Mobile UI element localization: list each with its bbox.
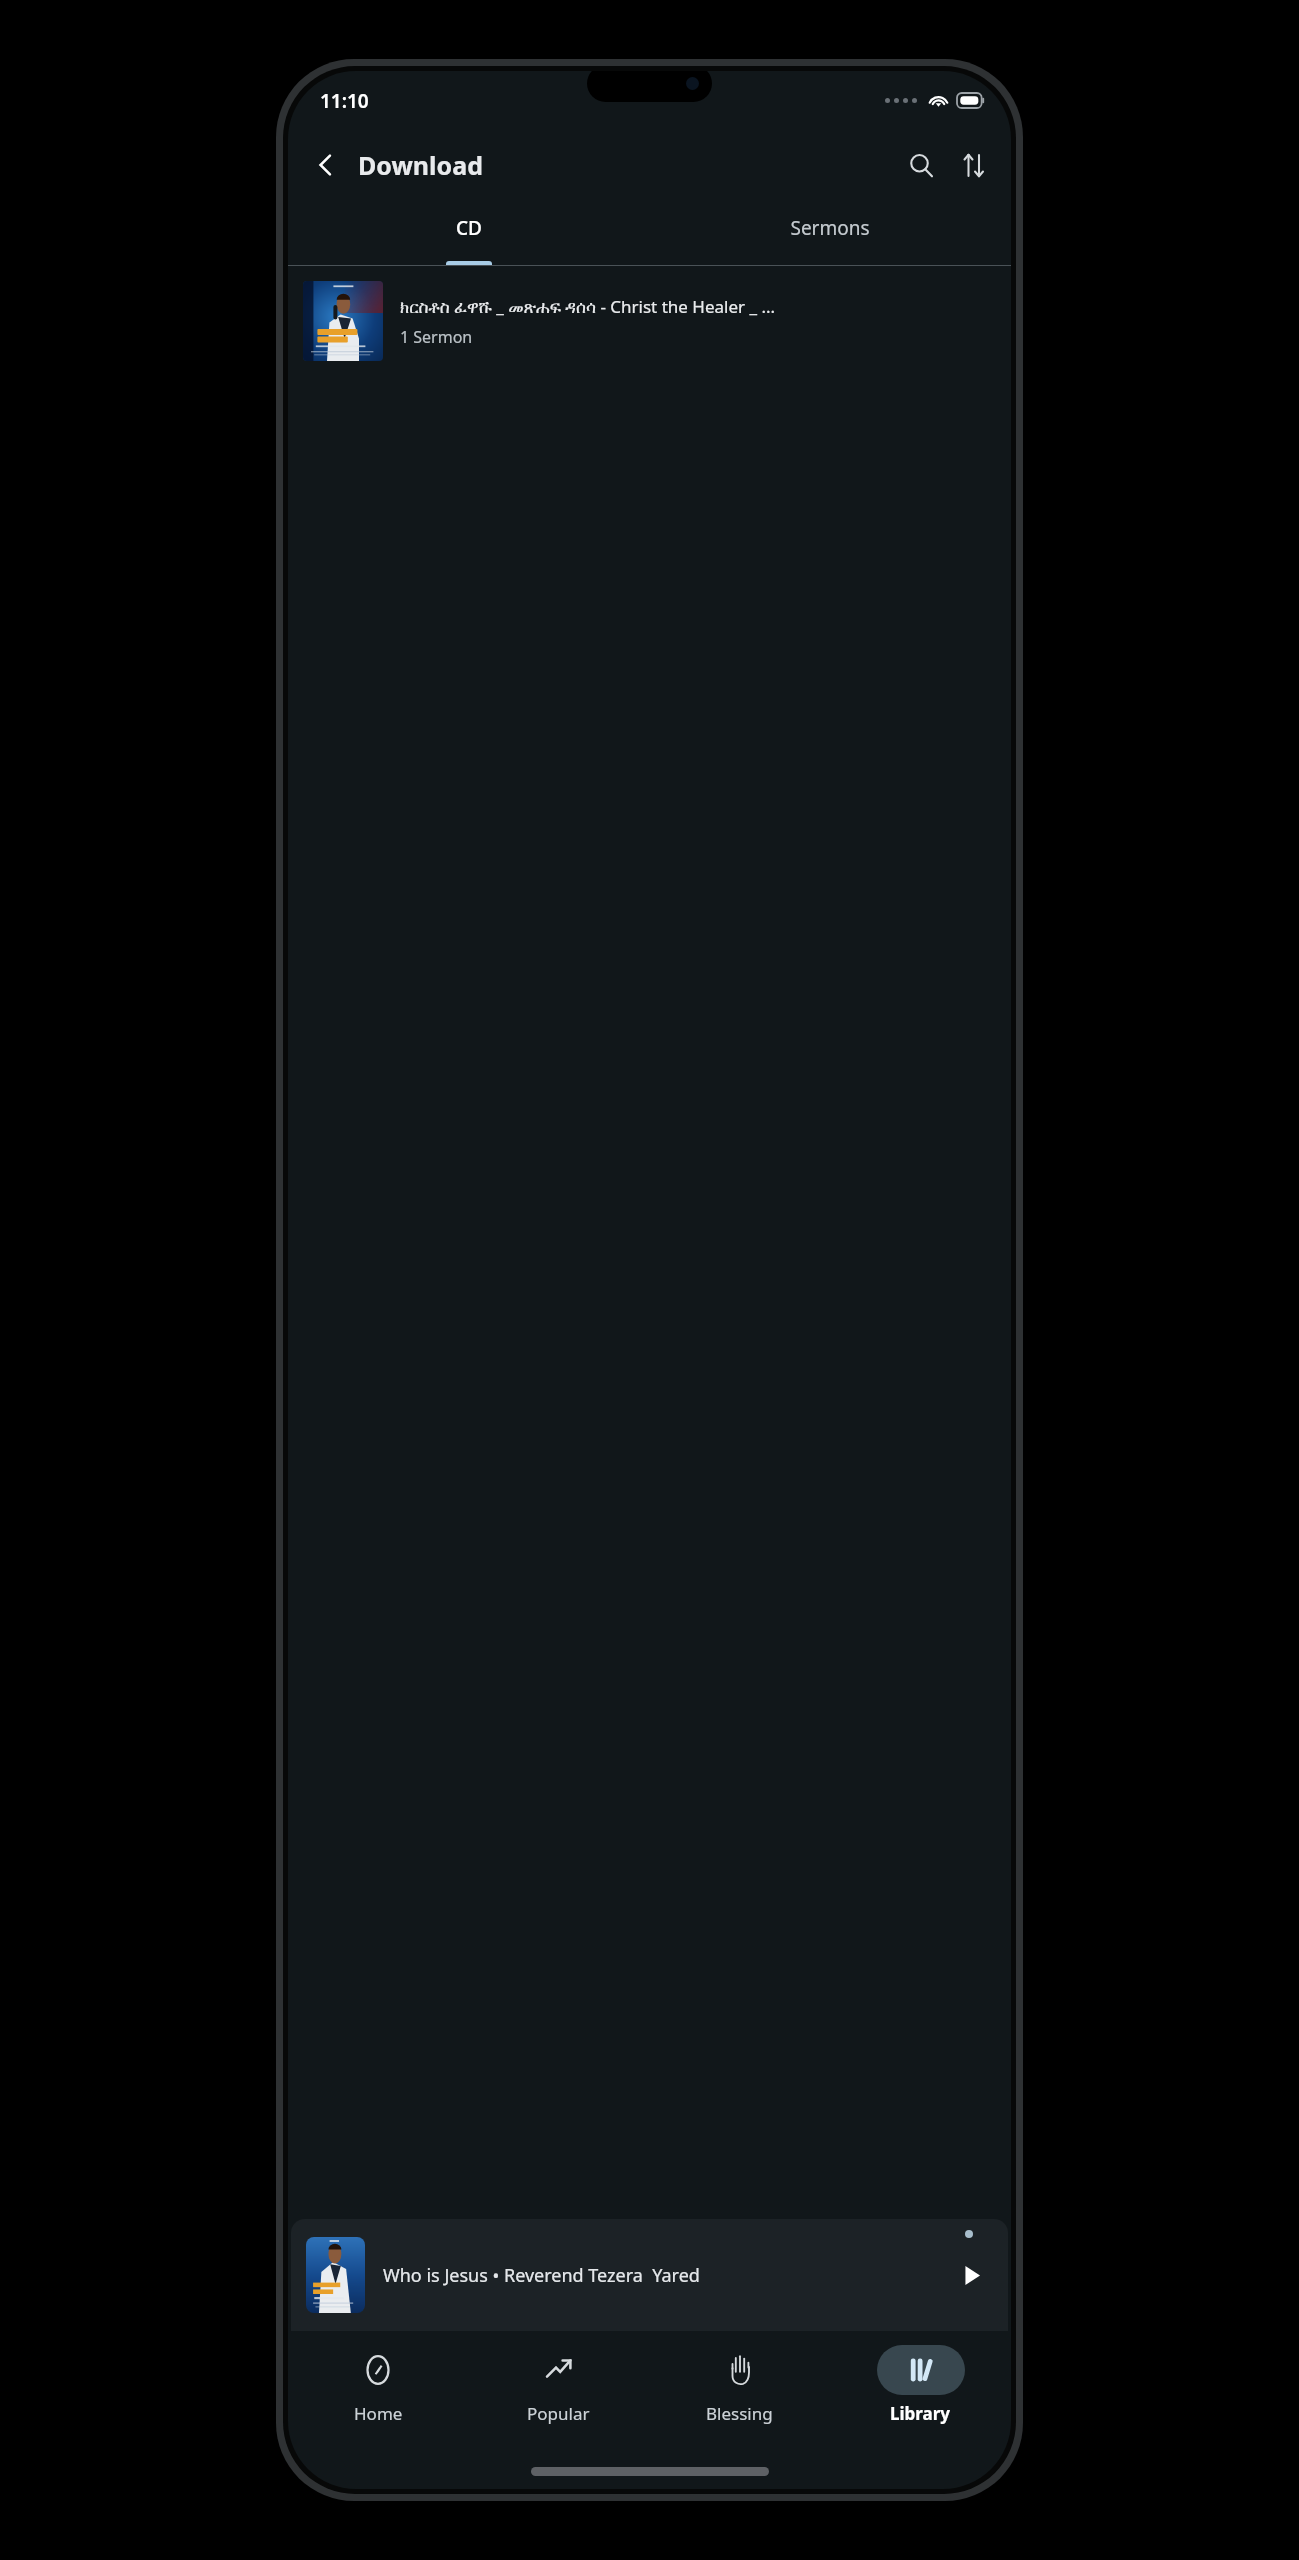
staticText: CD <box>456 215 482 241</box>
staticText: Who is Jesus • Reverend Tezera Yared <box>383 2263 941 2288</box>
staticText: Sermons <box>790 215 870 241</box>
staticText: Blessing <box>706 2402 773 2425</box>
button[interactable]: Who is Jesus • Reverend Tezera Yared <box>291 2219 1008 2331</box>
button[interactable]: Library <box>830 2337 1011 2453</box>
button[interactable]: Home <box>288 2337 468 2453</box>
button[interactable]: Blessing <box>649 2337 830 2453</box>
staticText: ክርስቶስ ፈዋሹ _ መጽሐፍ ዳሰሳ - Christ the Healer… <box>400 295 776 318</box>
button[interactable]: Sort <box>949 141 997 189</box>
staticText: Library <box>890 2402 951 2425</box>
button[interactable]: Sermons <box>649 201 1011 265</box>
button[interactable]: Popular <box>468 2337 649 2453</box>
button[interactable]: Search <box>897 141 945 189</box>
button[interactable]: Play <box>949 2253 993 2297</box>
staticText: Popular <box>527 2402 590 2425</box>
button[interactable]: CD <box>288 201 649 265</box>
staticText: 11:10 <box>320 88 369 114</box>
button[interactable]: Back <box>302 141 350 189</box>
staticText: 1 Sermon <box>400 326 473 348</box>
button[interactable]: ክርስቶስ ፈዋሹ _ መጽሐፍ ዳሰሳ - Christ the Healer… <box>288 273 1011 369</box>
staticText: Download <box>358 148 483 182</box>
staticText: Home <box>354 2402 403 2425</box>
